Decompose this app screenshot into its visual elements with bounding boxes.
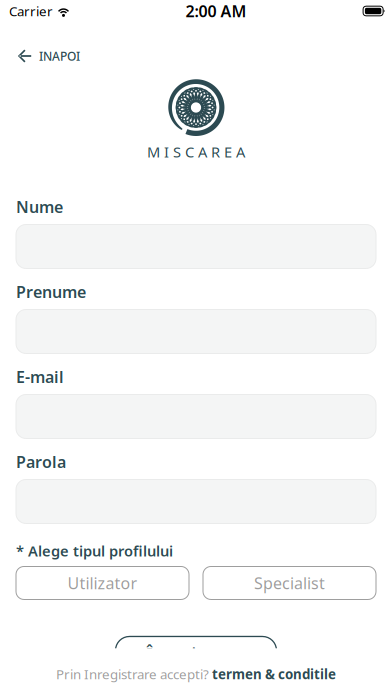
button[interactable]: Utilizator: [16, 566, 189, 599]
staticText: termen & conditile: [212, 665, 336, 683]
staticText: M I S C A R E A: [147, 142, 245, 161]
button[interactable]: termen & conditile: [212, 665, 336, 683]
staticText: Prin Inregistrare accepti?: [56, 665, 209, 683]
button[interactable]: INAPOI: [0, 43, 98, 69]
staticText: Înregistrare: [146, 643, 245, 666]
button[interactable]: Înregistrare: [115, 636, 276, 672]
staticText: Prenume: [16, 281, 86, 302]
staticText: Nume: [16, 196, 63, 217]
staticText: E-mail: [16, 366, 64, 387]
staticText: Specialist: [254, 572, 325, 594]
staticText: * Alege tipul profilului: [16, 541, 173, 560]
staticText: 2:00 AM: [186, 0, 247, 22]
staticText: INAPOI: [39, 48, 80, 64]
staticText: Utilizator: [67, 572, 137, 594]
button[interactable]: Specialist: [203, 566, 376, 599]
staticText: Parola: [16, 451, 66, 472]
staticText: Carrier: [9, 2, 53, 20]
